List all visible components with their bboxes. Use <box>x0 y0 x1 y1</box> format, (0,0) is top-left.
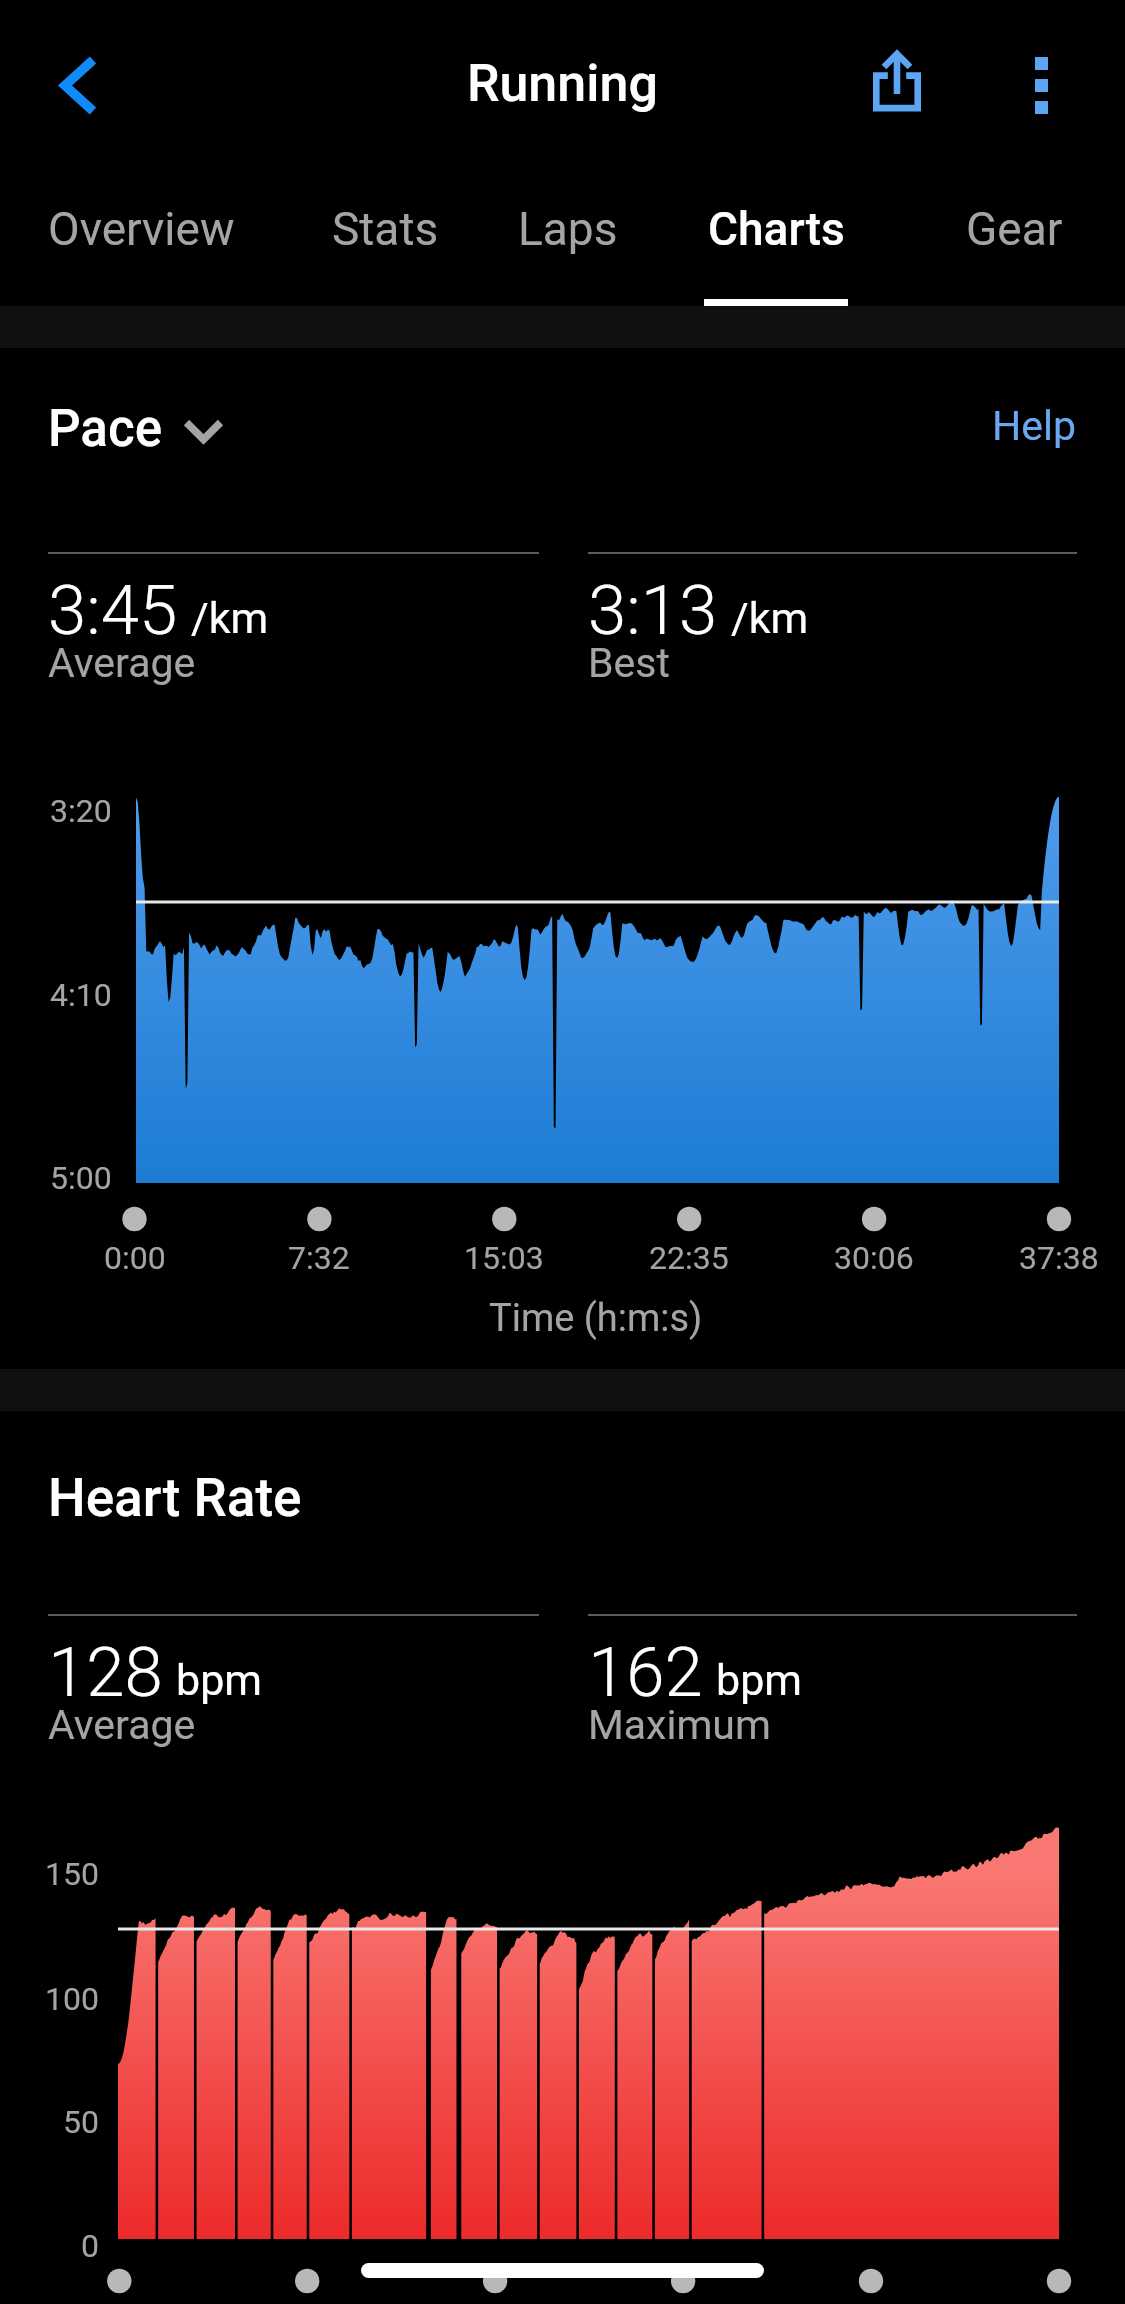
button[interactable]: Pace <box>48 392 224 466</box>
staticText: 162 <box>588 1632 703 1713</box>
button[interactable]: Laps <box>458 170 678 306</box>
button[interactable]: Charts <box>666 170 886 306</box>
staticText: Running <box>467 53 658 114</box>
staticText: 22:35 <box>649 1239 729 1277</box>
staticText: 15:03 <box>464 1239 544 1277</box>
staticText: Stats <box>332 202 439 256</box>
staticText: Average <box>48 1701 196 1749</box>
button[interactable]: Stats <box>275 170 495 306</box>
staticText: bpm <box>176 1655 262 1705</box>
staticText: 5:00 <box>50 1159 112 1197</box>
staticText: Overview <box>48 202 235 256</box>
staticText: 128 <box>48 1632 163 1713</box>
staticText: 7:32 <box>288 1239 350 1277</box>
staticText: /km <box>191 593 269 643</box>
staticText: 150 <box>45 1855 99 1893</box>
staticText: 4:10 <box>50 976 112 1014</box>
button[interactable]: Back <box>24 30 134 140</box>
button[interactable]: Help <box>965 389 1102 463</box>
staticText: 3:20 <box>50 792 112 830</box>
button[interactable]: More options <box>986 30 1096 140</box>
staticText: 37:38 <box>1019 1239 1099 1277</box>
staticText: Charts <box>708 202 845 256</box>
staticText: Maximum <box>588 1701 771 1749</box>
staticText: Heart Rate <box>48 1467 302 1529</box>
staticText: 0:00 <box>104 1239 166 1277</box>
staticText: 100 <box>45 1980 99 2018</box>
staticText: 3:13 <box>588 570 718 651</box>
staticText: /km <box>731 593 809 643</box>
button[interactable]: Overview <box>31 170 251 306</box>
staticText: bpm <box>716 1655 802 1705</box>
staticText: Help <box>992 402 1076 450</box>
staticText: 0 <box>81 2227 99 2265</box>
staticText: 30:06 <box>834 1239 914 1277</box>
staticText: Gear <box>966 202 1063 256</box>
staticText: Average <box>48 639 196 687</box>
staticText: Time (h:m:s) <box>489 1296 703 1341</box>
staticText: Laps <box>518 202 618 256</box>
button[interactable]: Share <box>842 26 952 136</box>
staticText: 50 <box>63 2103 99 2141</box>
staticText: Pace <box>48 399 163 459</box>
staticText: 3:45 <box>48 570 178 651</box>
staticText: Best <box>588 639 670 687</box>
button[interactable]: Gear <box>904 170 1124 306</box>
